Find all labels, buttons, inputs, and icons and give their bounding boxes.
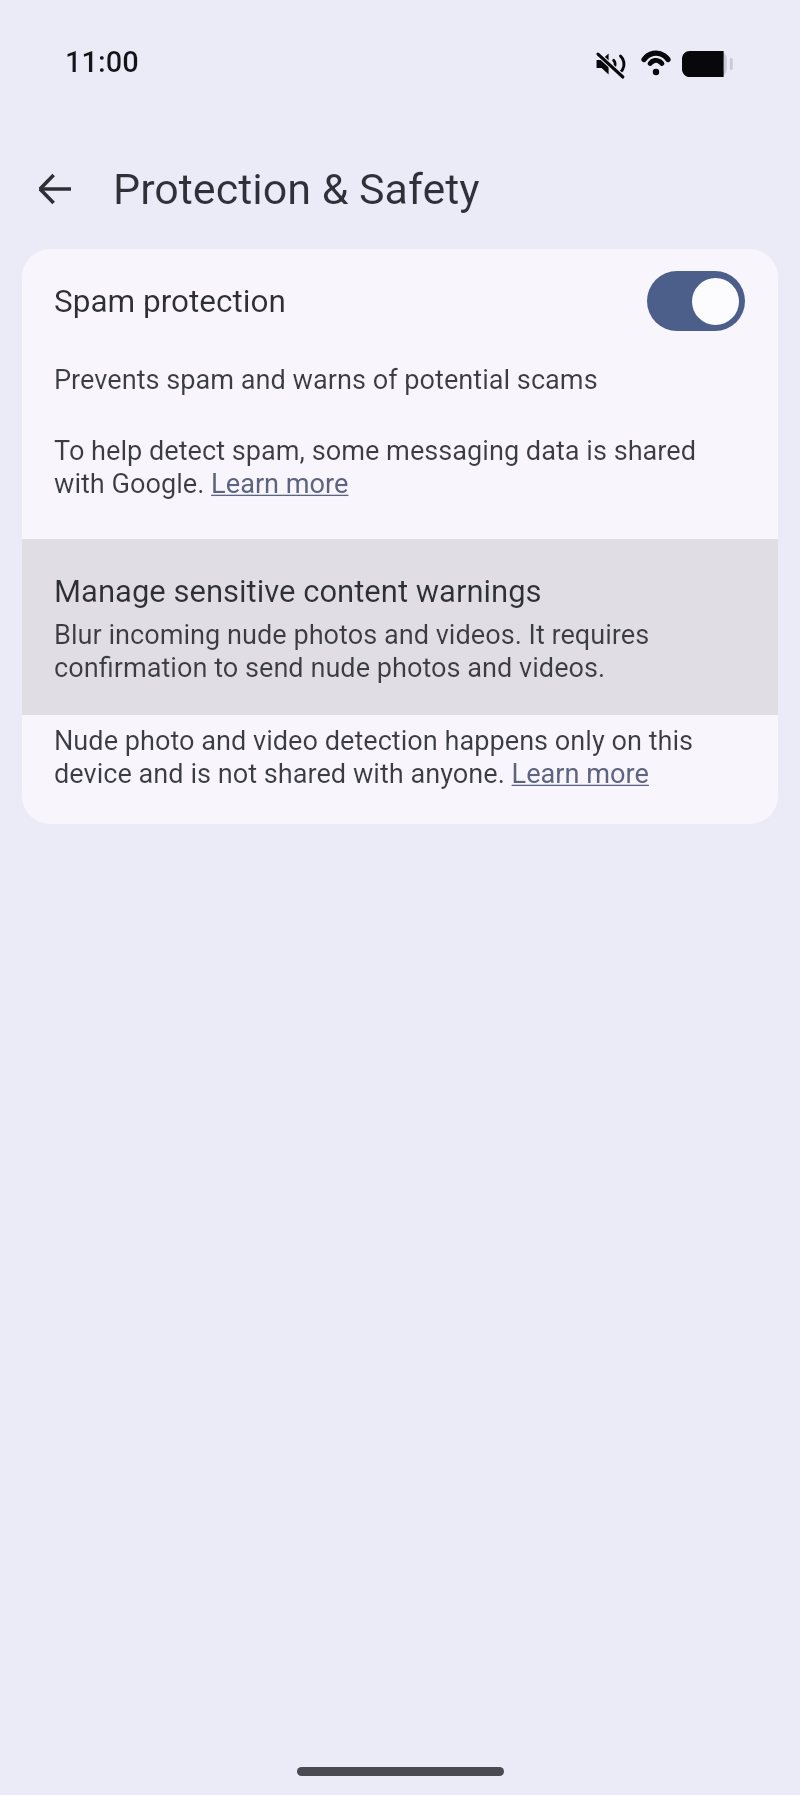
- staticText: Nude photo and video detection happens o…: [54, 725, 722, 790]
- button[interactable]: Back: [26, 160, 84, 218]
- staticText: Protection & Safety: [113, 164, 480, 214]
- button[interactable]: Manage sensitive content warnings: [22, 539, 778, 715]
- button[interactable]: Spam protection toggle: [647, 271, 745, 331]
- button[interactable]: Spam protection: [22, 249, 778, 539]
- staticText: Manage sensitive content warnings: [54, 573, 542, 609]
- staticText: Blur incoming nude photos and videos. It…: [54, 619, 714, 684]
- button[interactable]: Learn more about spam protection: [212, 468, 350, 504]
- staticText: 11:00: [65, 45, 139, 79]
- staticText: Spam protection: [54, 283, 286, 320]
- staticText: Prevents spam and warns of potential sca…: [54, 364, 598, 396]
- button[interactable]: Learn more about nude content detection: [510, 757, 650, 793]
- staticText: To help detect spam, some messaging data…: [54, 435, 719, 500]
